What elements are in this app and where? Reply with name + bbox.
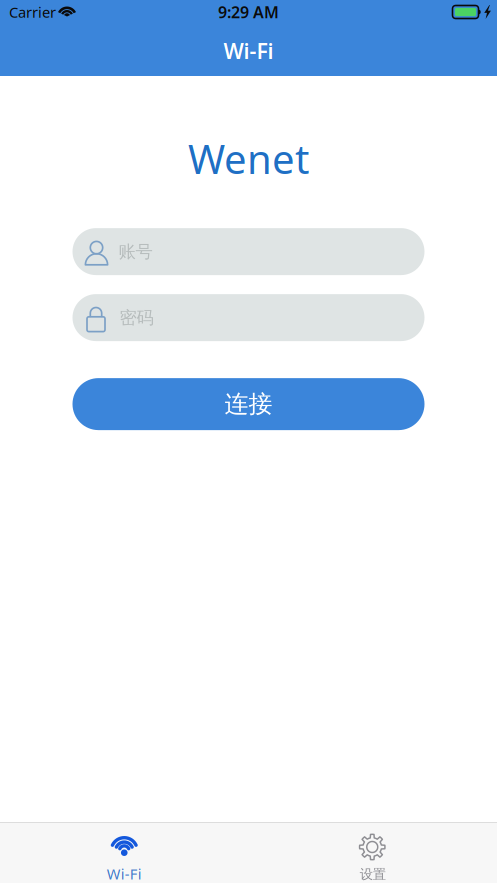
staticText: 9:29 AM xyxy=(218,1,279,23)
staticText: 账号 xyxy=(118,241,152,262)
button[interactable]: 设置 xyxy=(248,823,497,883)
staticText: 连接 xyxy=(224,389,272,419)
staticText: Wenet xyxy=(188,132,309,185)
staticText: Wi-Fi xyxy=(223,37,273,65)
staticText: Wi-Fi xyxy=(107,864,142,883)
staticText: Carrier xyxy=(9,2,56,22)
button[interactable]: Wi-Fi xyxy=(0,823,248,883)
button[interactable]: 连接 xyxy=(72,378,424,430)
staticText: 设置 xyxy=(360,866,386,882)
staticText: 密码 xyxy=(119,307,153,328)
